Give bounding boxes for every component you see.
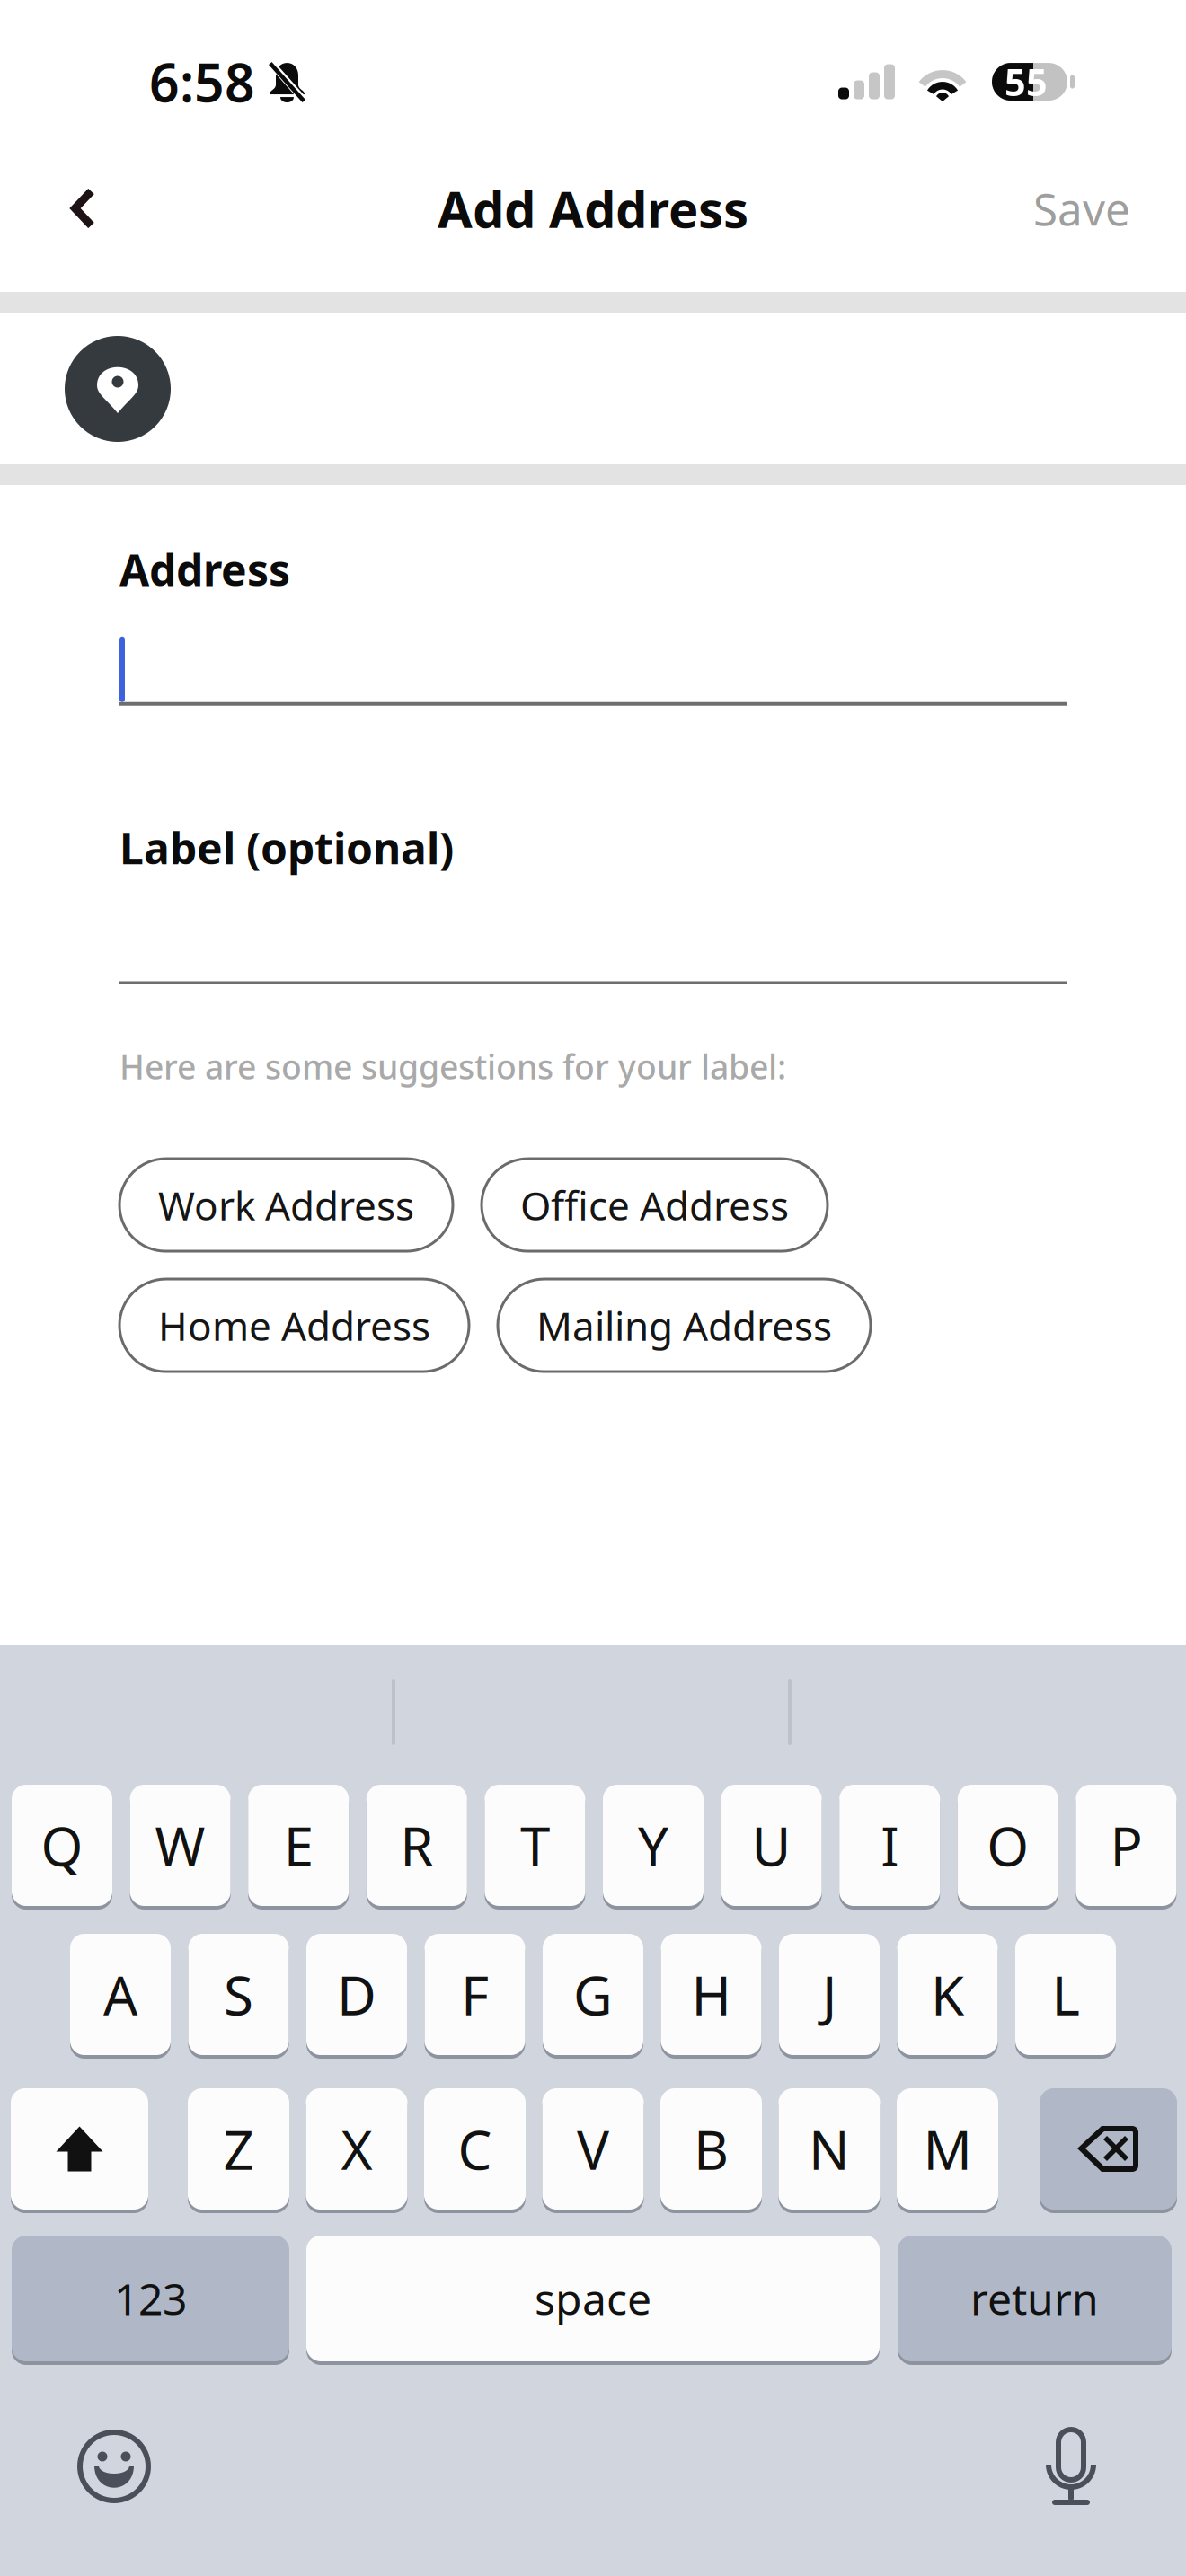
staticText: K bbox=[931, 1959, 964, 2030]
button[interactable]: X bbox=[306, 2088, 407, 2213]
button[interactable]: Dictation bbox=[1046, 2429, 1096, 2508]
staticText: Q bbox=[41, 1810, 83, 1881]
staticText: Save bbox=[1033, 179, 1130, 238]
button[interactable]: K bbox=[897, 1934, 998, 2059]
staticText: S bbox=[224, 1959, 253, 2030]
staticText: N bbox=[809, 2113, 850, 2185]
staticText: Label (optional) bbox=[119, 819, 454, 876]
staticText: E bbox=[284, 1810, 313, 1881]
button[interactable]: P bbox=[1076, 1785, 1176, 1910]
button[interactable]: Q bbox=[12, 1785, 112, 1910]
button[interactable]: H bbox=[661, 1934, 761, 2059]
staticText: 6:58 bbox=[149, 47, 255, 117]
button[interactable]: return bbox=[898, 2236, 1172, 2365]
button[interactable]: Z bbox=[188, 2088, 289, 2213]
button[interactable]: M bbox=[897, 2088, 998, 2213]
button[interactable]: J bbox=[779, 1934, 880, 2059]
button[interactable]: O bbox=[958, 1785, 1058, 1910]
staticText: C bbox=[458, 2113, 492, 2185]
button[interactable]: N bbox=[779, 2088, 880, 2213]
staticText: Here are some suggestions for your label… bbox=[119, 1044, 786, 1089]
staticText: I bbox=[881, 1810, 899, 1881]
staticText: Y bbox=[638, 1810, 668, 1881]
staticText: B bbox=[694, 2113, 729, 2185]
button[interactable]: G bbox=[543, 1934, 643, 2059]
staticText: R bbox=[400, 1810, 433, 1881]
staticText: D bbox=[337, 1959, 376, 2030]
staticText: T bbox=[520, 1810, 550, 1881]
button[interactable]: T bbox=[485, 1785, 585, 1910]
button[interactable]: B bbox=[660, 2088, 762, 2213]
button[interactable]: E bbox=[248, 1785, 349, 1910]
button[interactable]: Mailing Address bbox=[498, 1279, 871, 1372]
staticText: X bbox=[341, 2113, 372, 2185]
button[interactable]: W bbox=[130, 1785, 231, 1910]
button[interactable]: A bbox=[70, 1934, 171, 2059]
staticText: 55 bbox=[1005, 57, 1048, 106]
staticText: U bbox=[752, 1810, 791, 1881]
button[interactable]: Y bbox=[603, 1785, 704, 1910]
staticText: Z bbox=[223, 2113, 254, 2185]
button[interactable]: R bbox=[366, 1785, 467, 1910]
button[interactable]: Shift bbox=[11, 2088, 148, 2213]
staticText: Home Address bbox=[158, 1299, 430, 1352]
staticText: L bbox=[1052, 1959, 1080, 2030]
staticText: M bbox=[923, 2113, 972, 2185]
button[interactable]: C bbox=[424, 2088, 526, 2213]
staticText: O bbox=[987, 1810, 1029, 1881]
button[interactable]: Office Address bbox=[482, 1159, 828, 1251]
staticText: return bbox=[970, 2270, 1099, 2327]
button[interactable]: 123 bbox=[12, 2236, 289, 2365]
staticText: V bbox=[577, 2113, 609, 2185]
staticText: H bbox=[691, 1959, 731, 2030]
button[interactable]: V bbox=[542, 2088, 644, 2213]
button[interactable]: Work Address bbox=[119, 1159, 453, 1251]
staticText: A bbox=[103, 1959, 137, 2030]
button[interactable]: Save bbox=[994, 152, 1186, 265]
staticText: Office Address bbox=[520, 1179, 789, 1231]
button[interactable]: D bbox=[306, 1934, 407, 2059]
button[interactable]: S bbox=[188, 1934, 289, 2059]
staticText: Add Address bbox=[438, 175, 748, 242]
staticText: Mailing Address bbox=[536, 1299, 832, 1352]
button[interactable]: Back bbox=[0, 166, 135, 251]
button[interactable]: Home Address bbox=[119, 1279, 469, 1372]
button[interactable]: U bbox=[721, 1785, 822, 1910]
staticText: G bbox=[573, 1959, 613, 2030]
button[interactable]: Delete bbox=[1040, 2088, 1177, 2213]
button[interactable]: F bbox=[425, 1934, 525, 2059]
staticText: 123 bbox=[114, 2270, 187, 2327]
button[interactable]: Emoji bbox=[78, 2430, 150, 2502]
button[interactable]: space bbox=[306, 2236, 880, 2365]
staticText: Address bbox=[119, 541, 290, 598]
staticText: Work Address bbox=[158, 1179, 414, 1231]
button[interactable]: L bbox=[1015, 1934, 1116, 2059]
staticText: J bbox=[822, 1959, 836, 2030]
staticText: F bbox=[461, 1959, 489, 2030]
staticText: W bbox=[155, 1810, 205, 1881]
staticText: P bbox=[1110, 1810, 1142, 1881]
button[interactable]: I bbox=[839, 1785, 940, 1910]
staticText: space bbox=[535, 2270, 651, 2327]
